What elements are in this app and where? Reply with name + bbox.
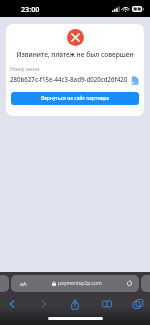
button[interactable]: Back (2, 294, 22, 314)
staticText: 280b627c-f15e-44c3-8ad9-d020cd26f420 (10, 75, 128, 83)
button[interactable]: Вернуться на сайт партнера (11, 92, 139, 105)
staticText: Вернуться на сайт партнера (41, 95, 109, 102)
button[interactable]: Reload (126, 280, 133, 287)
staticText: 23:00 (21, 4, 40, 14)
button[interactable]: Forward (34, 294, 54, 314)
staticText: Извините, платеж не был совершен (6, 50, 144, 59)
button[interactable]: Bookmarks (97, 294, 117, 314)
staticText: aA (20, 280, 27, 287)
button[interactable]: Share (65, 294, 85, 314)
staticText: Номер заказа (10, 66, 40, 72)
button[interactable]: Tabs (128, 294, 148, 314)
staticText: paymentsp2p.com (58, 280, 102, 287)
button[interactable]: Copy order number (129, 75, 139, 85)
button[interactable]: aA (11, 275, 139, 292)
